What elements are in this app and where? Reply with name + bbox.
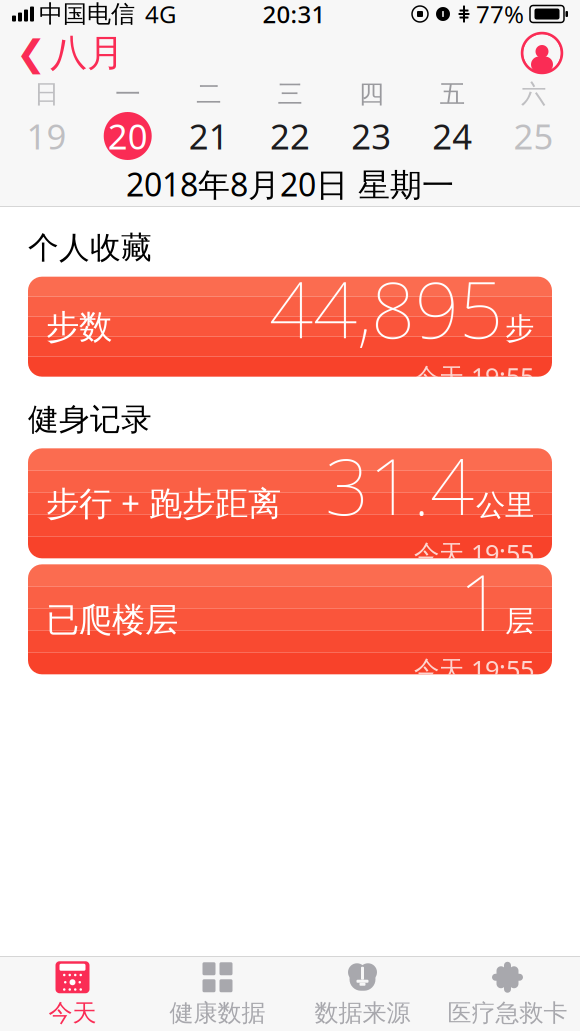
staticText: 六	[521, 78, 546, 109]
staticText: 1	[459, 550, 503, 652]
staticText: 今天 19:55	[414, 536, 534, 570]
staticText: 层	[505, 603, 534, 639]
staticText: 31.4	[325, 434, 474, 536]
button[interactable]: 三	[249, 78, 330, 162]
staticText: 健康数据	[169, 998, 265, 1028]
staticText: 步行 + 跑步距离	[46, 480, 281, 525]
button[interactable]: 已爬楼层	[28, 564, 552, 674]
staticText: 今天	[48, 998, 96, 1028]
button[interactable]: 医疗急救卡	[435, 957, 580, 1031]
staticText: ❮	[16, 33, 46, 73]
staticText: 步数	[46, 307, 112, 348]
staticText: 中国电信	[39, 0, 135, 29]
staticText: 已爬楼层	[46, 599, 178, 640]
staticText: 今天 19:55	[414, 652, 534, 686]
staticText: 三	[277, 78, 302, 109]
button[interactable]: 日	[6, 78, 87, 162]
button[interactable]: 数据来源	[290, 957, 435, 1031]
button[interactable]: 四	[331, 78, 412, 162]
staticText: 25	[513, 113, 553, 159]
staticText: 今天 19:55	[414, 360, 534, 393]
staticText: 19	[27, 113, 67, 159]
staticText: 个人收藏	[28, 229, 152, 267]
staticText: 24	[432, 113, 472, 159]
button[interactable]: 健康数据	[145, 957, 290, 1031]
staticText: 医疗急救卡	[447, 998, 567, 1028]
staticText: 数据来源	[314, 998, 410, 1028]
button[interactable]: 今天	[0, 957, 145, 1031]
staticText: 公里	[476, 487, 534, 523]
staticText: 77%	[476, 0, 524, 30]
staticText: 八月	[50, 30, 124, 76]
staticText: 22	[270, 113, 310, 159]
staticText: 44,895	[269, 257, 503, 360]
staticText: 二	[196, 78, 221, 109]
staticText: 步	[505, 311, 534, 347]
staticText: 日	[34, 78, 59, 109]
staticText: 4G	[145, 0, 176, 30]
staticText: 21	[189, 113, 229, 159]
button[interactable]: 个人资料	[508, 28, 580, 78]
staticText: 四	[359, 78, 384, 109]
staticText: 五	[440, 78, 465, 109]
staticText: 健身记录	[28, 401, 152, 438]
staticText: 20:31	[262, 0, 325, 30]
button[interactable]: 五	[412, 78, 493, 162]
button[interactable]: 六	[493, 78, 574, 162]
button[interactable]: ❮	[0, 28, 138, 78]
button[interactable]: 一	[87, 78, 168, 162]
staticText: 2018年8月20日 星期一	[126, 163, 454, 205]
staticText: 20	[108, 113, 148, 159]
button[interactable]: 步数	[28, 277, 552, 377]
staticText: 23	[351, 113, 391, 159]
button[interactable]: 二	[168, 78, 249, 162]
button[interactable]: 步行 + 跑步距离	[28, 448, 552, 558]
staticText: 一	[115, 78, 140, 109]
